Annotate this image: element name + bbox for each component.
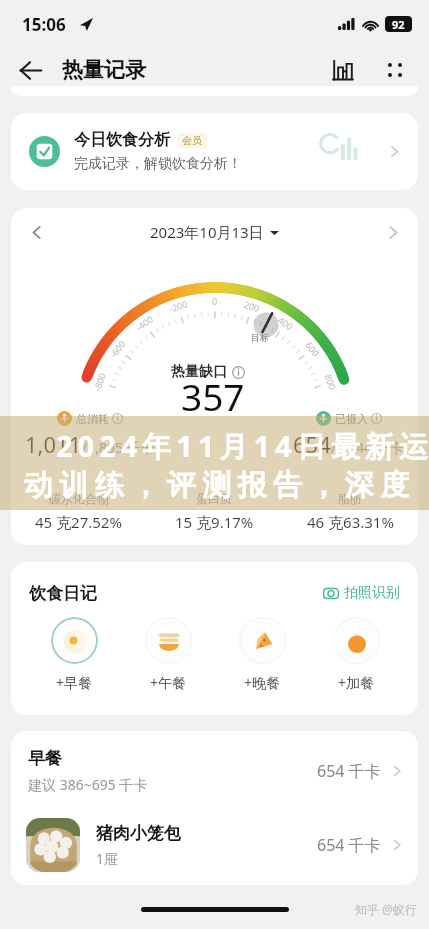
button[interactable]: +晚餐	[215, 617, 309, 692]
button[interactable]: +午餐	[121, 617, 215, 692]
staticText: 猪肉小笼包	[96, 823, 181, 844]
staticText: 1,011	[25, 429, 82, 459]
button[interactable]: 猪肉小笼包	[11, 810, 418, 880]
staticText: 2024年11月14日最新运	[56, 426, 429, 466]
button[interactable]: Back	[8, 48, 52, 92]
staticText: 动训练，评测报告，深度	[24, 467, 416, 504]
button[interactable]: Statistics	[323, 50, 363, 90]
staticText: 已摄入	[335, 412, 368, 426]
staticText: 45 克27.52%	[35, 512, 122, 532]
staticText: 15 克9.17%	[175, 512, 254, 532]
staticText: 总消耗	[76, 412, 109, 426]
button[interactable]: 拍照识别	[319, 580, 404, 606]
staticText: 200	[243, 298, 261, 314]
staticText: 654 千卡	[317, 834, 381, 856]
staticText: 饮食日记	[29, 583, 97, 604]
staticText: 600	[303, 339, 323, 359]
button[interactable]: More options	[375, 50, 415, 90]
staticText: 2023年10月13日	[150, 222, 264, 242]
staticText: +加餐	[338, 673, 375, 692]
staticText: 目标	[251, 332, 269, 343]
staticText: -200	[168, 297, 189, 314]
staticText: 早餐	[28, 748, 62, 769]
staticText: -800	[90, 371, 108, 393]
staticText: 会员	[182, 134, 202, 147]
staticText: /1,844 千卡	[331, 438, 404, 457]
button[interactable]: 今日饮食分析	[11, 113, 418, 190]
staticText: 拍照识别	[344, 584, 400, 602]
staticText: +午餐	[150, 673, 187, 692]
button[interactable]: +加餐	[309, 617, 403, 692]
staticText: 知乎 @蚁行	[355, 901, 417, 917]
button[interactable]: Next day	[376, 215, 410, 249]
staticText: 654 千卡	[317, 760, 381, 782]
staticText: 完成记录，解锁饮食分析！	[74, 155, 242, 173]
staticText: 46 克63.31%	[307, 512, 394, 532]
staticText: 800	[323, 372, 339, 391]
staticText: 15:06	[22, 13, 66, 36]
staticText: 今日饮食分析	[74, 130, 170, 150]
button[interactable]: 早餐	[11, 731, 418, 810]
staticText: 400	[276, 313, 296, 332]
staticText: -400	[133, 312, 156, 333]
staticText: /1,895 千卡	[82, 438, 155, 457]
staticText: 碳水化合物	[49, 491, 109, 506]
staticText: 1屉	[96, 849, 119, 868]
staticText: 654	[293, 429, 331, 459]
staticText: 热量记录	[62, 57, 146, 83]
staticText: 蛋白质	[196, 491, 232, 506]
staticText: 357	[181, 371, 245, 421]
staticText: 脂肪	[338, 491, 362, 506]
staticText: 92	[392, 17, 405, 32]
staticText: -600	[107, 337, 128, 360]
staticText: 0	[212, 295, 218, 307]
button[interactable]: +早餐	[27, 617, 121, 692]
staticText: +早餐	[56, 673, 93, 692]
staticText: 热量缺口	[171, 363, 227, 381]
button[interactable]: Previous day	[19, 215, 53, 249]
staticText: +晚餐	[244, 673, 281, 692]
staticText: 建议 386~695 千卡	[28, 775, 148, 794]
